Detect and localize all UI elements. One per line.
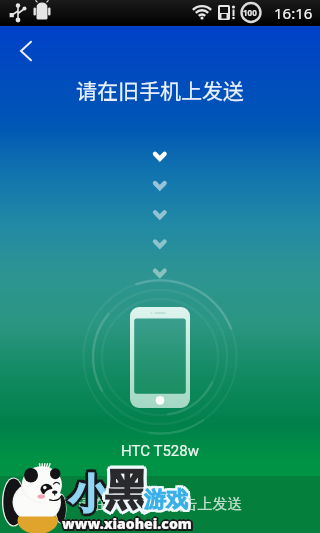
staticText: 黑 <box>105 461 148 515</box>
staticText: 小 <box>69 466 109 516</box>
staticText: 游戏 <box>146 488 190 516</box>
staticText: www.xiaohei.com <box>62 516 192 533</box>
staticText: 请在旧手机上发送 <box>0 75 320 105</box>
staticText: 小 <box>69 469 109 519</box>
staticText: 小 <box>69 472 109 522</box>
staticText: 小 <box>67 471 107 521</box>
staticText: www.xiaohei.com <box>60 514 190 533</box>
staticText: 游戏 <box>142 488 186 516</box>
staticText: 游戏 <box>144 484 188 512</box>
staticText: 黑 <box>102 464 145 518</box>
staticText: 黑 <box>107 466 150 520</box>
staticText: www.xiaohei.com <box>62 514 192 533</box>
staticText: 黑 <box>107 462 150 516</box>
staticText: 请在旧手机端点击上发送 <box>0 495 320 514</box>
staticText: www.xiaohei.com <box>64 514 194 533</box>
staticText: 小 <box>71 466 111 516</box>
staticText: 小 <box>72 469 112 519</box>
staticText: 小 <box>66 469 106 519</box>
staticText: 游戏 <box>142 484 186 512</box>
staticText: HTC T528w <box>0 442 320 460</box>
staticText: 游戏 <box>142 486 186 514</box>
staticText: 小 <box>67 466 107 516</box>
staticText: 游戏 <box>146 486 190 514</box>
staticText: 黑 <box>103 462 146 516</box>
staticText: 黑 <box>108 464 151 518</box>
button[interactable]: This phone <box>130 307 190 408</box>
staticText: www.xiaohei.com <box>64 513 194 532</box>
staticText: 黑 <box>105 467 148 521</box>
staticText: 小 <box>71 471 111 521</box>
button[interactable]: Back <box>11 36 41 66</box>
staticText: www.xiaohei.com <box>61 516 191 533</box>
staticText: 黑 <box>103 466 146 520</box>
staticText: www.xiaohei.com <box>64 516 194 533</box>
staticText: 黑 <box>105 464 148 518</box>
staticText: 100 <box>243 7 257 18</box>
staticText: 16:16 <box>274 3 313 23</box>
staticText: www.xiaohei.com <box>61 513 191 532</box>
staticText: 游戏 <box>144 488 188 516</box>
staticText: 游戏 <box>144 486 188 514</box>
staticText: www.xiaohei.com <box>62 512 192 531</box>
staticText: 游戏 <box>146 484 190 512</box>
